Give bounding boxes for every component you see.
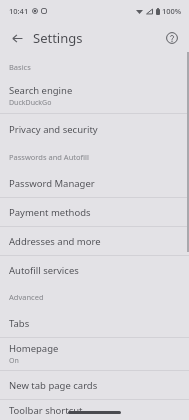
button[interactable]: Homepage [0, 338, 189, 370]
staticText: 10:41 [9, 6, 29, 16]
staticText: Toolbar shortcut [9, 404, 83, 417]
staticText: Homepage [9, 342, 59, 355]
button[interactable]: Back [6, 27, 28, 49]
staticText: Privacy and security [9, 123, 98, 136]
staticText: Advanced [9, 292, 44, 302]
staticText: On [9, 356, 19, 366]
staticText: Passwords and Autofill [9, 152, 89, 162]
staticText: Password Manager [9, 177, 95, 190]
button[interactable]: Password Manager [0, 169, 189, 197]
button[interactable]: Toolbar shortcut [0, 400, 189, 420]
button[interactable]: Tabs [0, 309, 189, 337]
button[interactable]: New tab page cards [0, 371, 189, 399]
staticText: Search engine [9, 84, 73, 97]
staticText: Basics [9, 62, 31, 72]
staticText: Settings [33, 29, 83, 47]
staticText: Addresses and more [9, 235, 101, 248]
staticText: 100% [162, 6, 182, 16]
button[interactable]: Privacy and security [0, 114, 189, 144]
button[interactable]: Help [161, 27, 183, 49]
button[interactable]: Search engine [0, 79, 189, 113]
button[interactable]: Addresses and more [0, 227, 189, 255]
button[interactable]: Payment methods [0, 198, 189, 226]
staticText: Tabs [9, 317, 30, 330]
staticText: DuckDuckGo [9, 98, 52, 108]
staticText: Payment methods [9, 206, 91, 219]
staticText: Autofill services [9, 264, 79, 277]
staticText: New tab page cards [9, 379, 98, 392]
button[interactable]: Autofill services [0, 256, 189, 284]
